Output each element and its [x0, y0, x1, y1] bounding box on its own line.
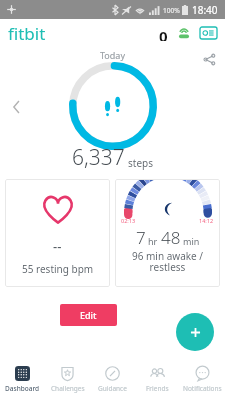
staticText: 96 min awake / restless: [115, 249, 220, 274]
staticText: Guidance: [98, 384, 127, 393]
button[interactable]: Device: [156, 26, 171, 41]
button[interactable]: 02:13: [115, 179, 220, 287]
staticText: Challenges: [51, 384, 85, 393]
staticText: Dashboard: [5, 384, 40, 393]
staticText: 55 resting bpm: [22, 262, 94, 276]
button[interactable]: Sync tracker: [175, 25, 192, 42]
staticText: fitbit: [8, 22, 46, 45]
staticText: 7: [136, 226, 146, 249]
button[interactable]: Edit: [60, 304, 117, 326]
staticText: min: [183, 235, 200, 247]
staticText: 48: [161, 226, 181, 249]
button[interactable]: Notifications: [180, 359, 225, 400]
button[interactable]: Dashboard: [0, 359, 45, 400]
button[interactable]: Account: [198, 23, 218, 43]
staticText: 6,337: [72, 143, 125, 172]
staticText: Notifications: [183, 384, 222, 393]
button[interactable]: --: [5, 179, 110, 287]
button[interactable]: Friends: [135, 359, 180, 400]
button[interactable]: Add: [176, 313, 214, 351]
staticText: --: [53, 237, 62, 255]
button[interactable]: Previous day: [7, 98, 25, 116]
button[interactable]: Challenges: [45, 359, 90, 400]
button[interactable]: Share: [199, 49, 219, 69]
staticText: 18:40: [192, 3, 218, 17]
staticText: 02:13: [121, 217, 136, 224]
staticText: Edit: [80, 309, 97, 321]
staticText: Friends: [146, 384, 169, 393]
staticText: Today: [100, 49, 125, 61]
button[interactable]: Guidance: [90, 359, 135, 400]
staticText: hr: [148, 235, 158, 247]
staticText: 0: [159, 26, 168, 41]
staticText: steps: [128, 156, 153, 170]
button[interactable]: [69, 62, 157, 150]
staticText: 100%: [163, 6, 180, 15]
staticText: 14:12: [199, 217, 214, 224]
